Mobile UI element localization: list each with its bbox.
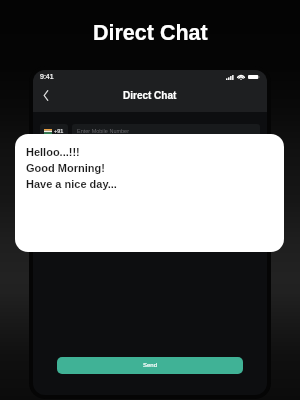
button[interactable]: Back xyxy=(37,87,54,104)
staticText: Send xyxy=(143,362,158,369)
staticText: Have a nice day... xyxy=(26,178,117,190)
button[interactable]: Send xyxy=(57,357,243,374)
staticText: 9:41 xyxy=(40,73,54,81)
button[interactable]: Enter Mobile Number xyxy=(72,124,260,138)
button[interactable]: +91 xyxy=(40,124,68,138)
staticText: Good Morning! xyxy=(26,162,105,174)
staticText: Direct Chat xyxy=(93,21,208,45)
staticText: Direct Chat xyxy=(123,90,177,101)
staticText: Helloo...!!! xyxy=(26,146,80,158)
staticText: +91 xyxy=(54,128,64,134)
staticText: Enter Mobile Number xyxy=(77,128,129,134)
